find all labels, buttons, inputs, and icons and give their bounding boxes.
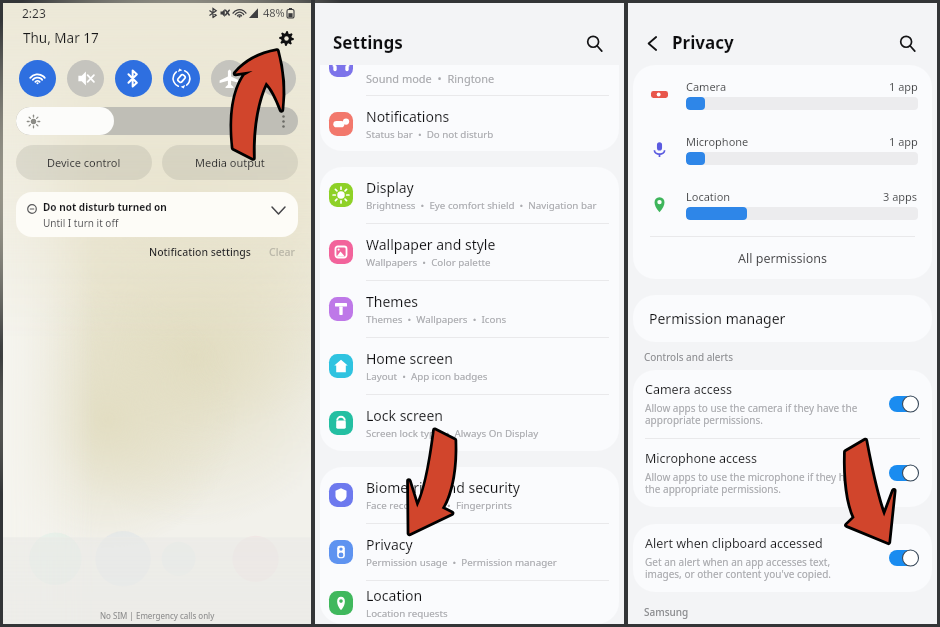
button[interactable]: Location [320,581,619,624]
button[interactable]: Back [641,32,663,54]
button[interactable]: Wallpaper and style [320,224,619,281]
button[interactable]: Themes [320,281,619,338]
button[interactable]: Location [651,177,918,232]
button[interactable]: Toggle Microphone access [889,464,919,482]
button[interactable]: Brightness [16,107,298,135]
staticText: Wallpaper and style [366,235,496,254]
staticText: 48% [263,5,285,20]
button[interactable]: Airplane mode [211,60,248,97]
button[interactable]: Bluetooth [115,60,152,97]
button[interactable]: Sound off [67,60,104,97]
staticText: Alert when clipboard accessed [645,535,823,552]
staticText: 2:23 [22,5,46,21]
staticText: Status bar • Do not disturb [366,128,494,141]
staticText: 1 app [889,134,918,149]
staticText: 3 apps [883,189,918,204]
button[interactable]: Home screen [320,338,619,395]
staticText: Camera [686,79,727,94]
button[interactable]: Notifications [320,96,619,151]
staticText: Themes • Wallpapers • Icons [366,313,507,326]
button[interactable]: Microphone [651,122,918,177]
staticText: Allow apps to use the camera if they hav… [645,401,858,427]
button[interactable]: Clear [269,245,295,259]
button[interactable]: Search [894,30,920,56]
staticText: Biometrics and security [366,478,520,497]
staticText: Privacy [366,535,413,554]
button[interactable]: Settings [275,27,297,49]
button[interactable]: Display [320,167,619,224]
staticText: Display [366,178,414,197]
staticText: Allow apps to use the microphone if they… [645,470,862,496]
button[interactable]: All permissions [633,237,932,279]
button[interactable]: Media output [162,145,298,180]
button[interactable]: Lock screen [320,395,619,451]
button[interactable]: Notification settings [149,245,251,259]
staticText: Permission manager [649,309,786,328]
staticText: Samsung [644,605,689,619]
button[interactable]: Permission manager [633,295,932,342]
staticText: Settings [333,31,403,54]
staticText: Location [366,586,423,605]
staticText: Lock screen [366,406,444,425]
button[interactable]: Search [581,30,607,56]
staticText: Media output [195,155,265,170]
staticText: Themes [366,292,419,311]
staticText: Privacy [672,31,734,54]
staticText: No SIM | Emergency calls only [100,610,215,621]
button[interactable]: Alert when clipboard accessed [645,524,919,592]
staticText: Location requests [366,607,448,620]
button[interactable]: Sound mode • Ringtone [320,65,619,95]
button[interactable]: Microphone access [645,439,919,507]
button[interactable]: Camera access [645,370,919,438]
button[interactable]: Do not disturb turned on [16,192,298,237]
staticText: Device control [47,155,121,170]
button[interactable]: Toggle Alert when clipboard accessed [889,549,919,567]
staticText: Wallpapers • Color palette [366,256,491,269]
staticText: 1 app [889,79,918,94]
staticText: Brightness • Eye comfort shield • Naviga… [366,199,597,212]
button[interactable]: Wi-Fi [19,60,56,97]
staticText: Controls and alerts [644,350,734,364]
staticText: Do not disturb turned on [43,200,167,214]
button[interactable]: Auto rotate [163,60,200,97]
staticText: Thu, Mar 17 [23,29,99,47]
staticText: Get an alert when an app accesses text, … [645,555,832,581]
staticText: Until I turn it off [43,216,119,230]
staticText: Camera access [645,381,732,398]
button[interactable]: Device control [16,145,152,180]
staticText: Notifications [366,107,450,126]
staticText: All permissions [738,250,827,267]
button[interactable]: Toggle Camera access [889,395,919,413]
staticText: Location [686,189,731,204]
staticText: Sound mode • Ringtone [366,71,495,86]
staticText: Permission usage • Permission manager [366,556,557,569]
button[interactable]: Flashlight [259,60,296,97]
button[interactable]: Biometrics and security [320,467,619,524]
staticText: Layout • App icon badges [366,370,488,383]
staticText: Microphone access [645,450,758,467]
staticText: Microphone [686,134,749,149]
button[interactable]: Camera [651,67,918,122]
staticText: Screen lock type • Always On Display [366,427,539,440]
staticText: Face recognition • Fingerprints [366,499,513,512]
button[interactable]: Privacy [320,524,619,581]
staticText: Home screen [366,349,453,368]
